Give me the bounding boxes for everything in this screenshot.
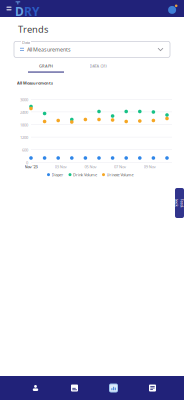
staticText: Urinate Volume <box>106 172 133 177</box>
staticText: RY <box>24 3 40 19</box>
staticText: 0 <box>26 160 28 165</box>
staticText: All Measurements <box>27 46 71 53</box>
button[interactable]: Menu <box>3 0 15 17</box>
staticText: Trends <box>18 23 48 35</box>
staticText: 3000 <box>20 97 28 102</box>
staticText: Drink Volume <box>73 172 97 177</box>
staticText: Diaper <box>51 172 63 177</box>
staticText: All Measurements <box>17 80 53 86</box>
staticText: Data <box>22 40 30 45</box>
staticText: 1800 <box>20 122 28 127</box>
button[interactable]: Feedback <box>175 188 184 218</box>
staticText: Nov '23 <box>24 164 37 169</box>
staticText: Feedback <box>175 198 184 208</box>
staticText: 03 Nov <box>55 164 67 169</box>
staticText: 05 Nov <box>84 164 96 169</box>
staticText: 1200 <box>20 135 28 140</box>
staticText: 09 Nov <box>144 164 156 169</box>
button[interactable]: Trends <box>94 376 133 400</box>
button[interactable]: All Measurements <box>14 41 170 57</box>
button[interactable]: Profile <box>16 376 55 400</box>
staticText: DATA (31) <box>89 63 106 68</box>
staticText: D <box>15 3 24 19</box>
button[interactable]: Reports <box>55 376 94 400</box>
staticText: 07 Nov <box>114 164 126 169</box>
staticText: 2400 <box>20 110 28 115</box>
button[interactable]: DATA (31) <box>80 62 116 73</box>
button[interactable]: Account <box>168 3 179 14</box>
staticText: 600 <box>22 147 28 153</box>
button[interactable]: GRAPH <box>28 62 64 73</box>
button[interactable]: Records <box>133 376 172 400</box>
staticText: GRAPH <box>39 63 53 68</box>
